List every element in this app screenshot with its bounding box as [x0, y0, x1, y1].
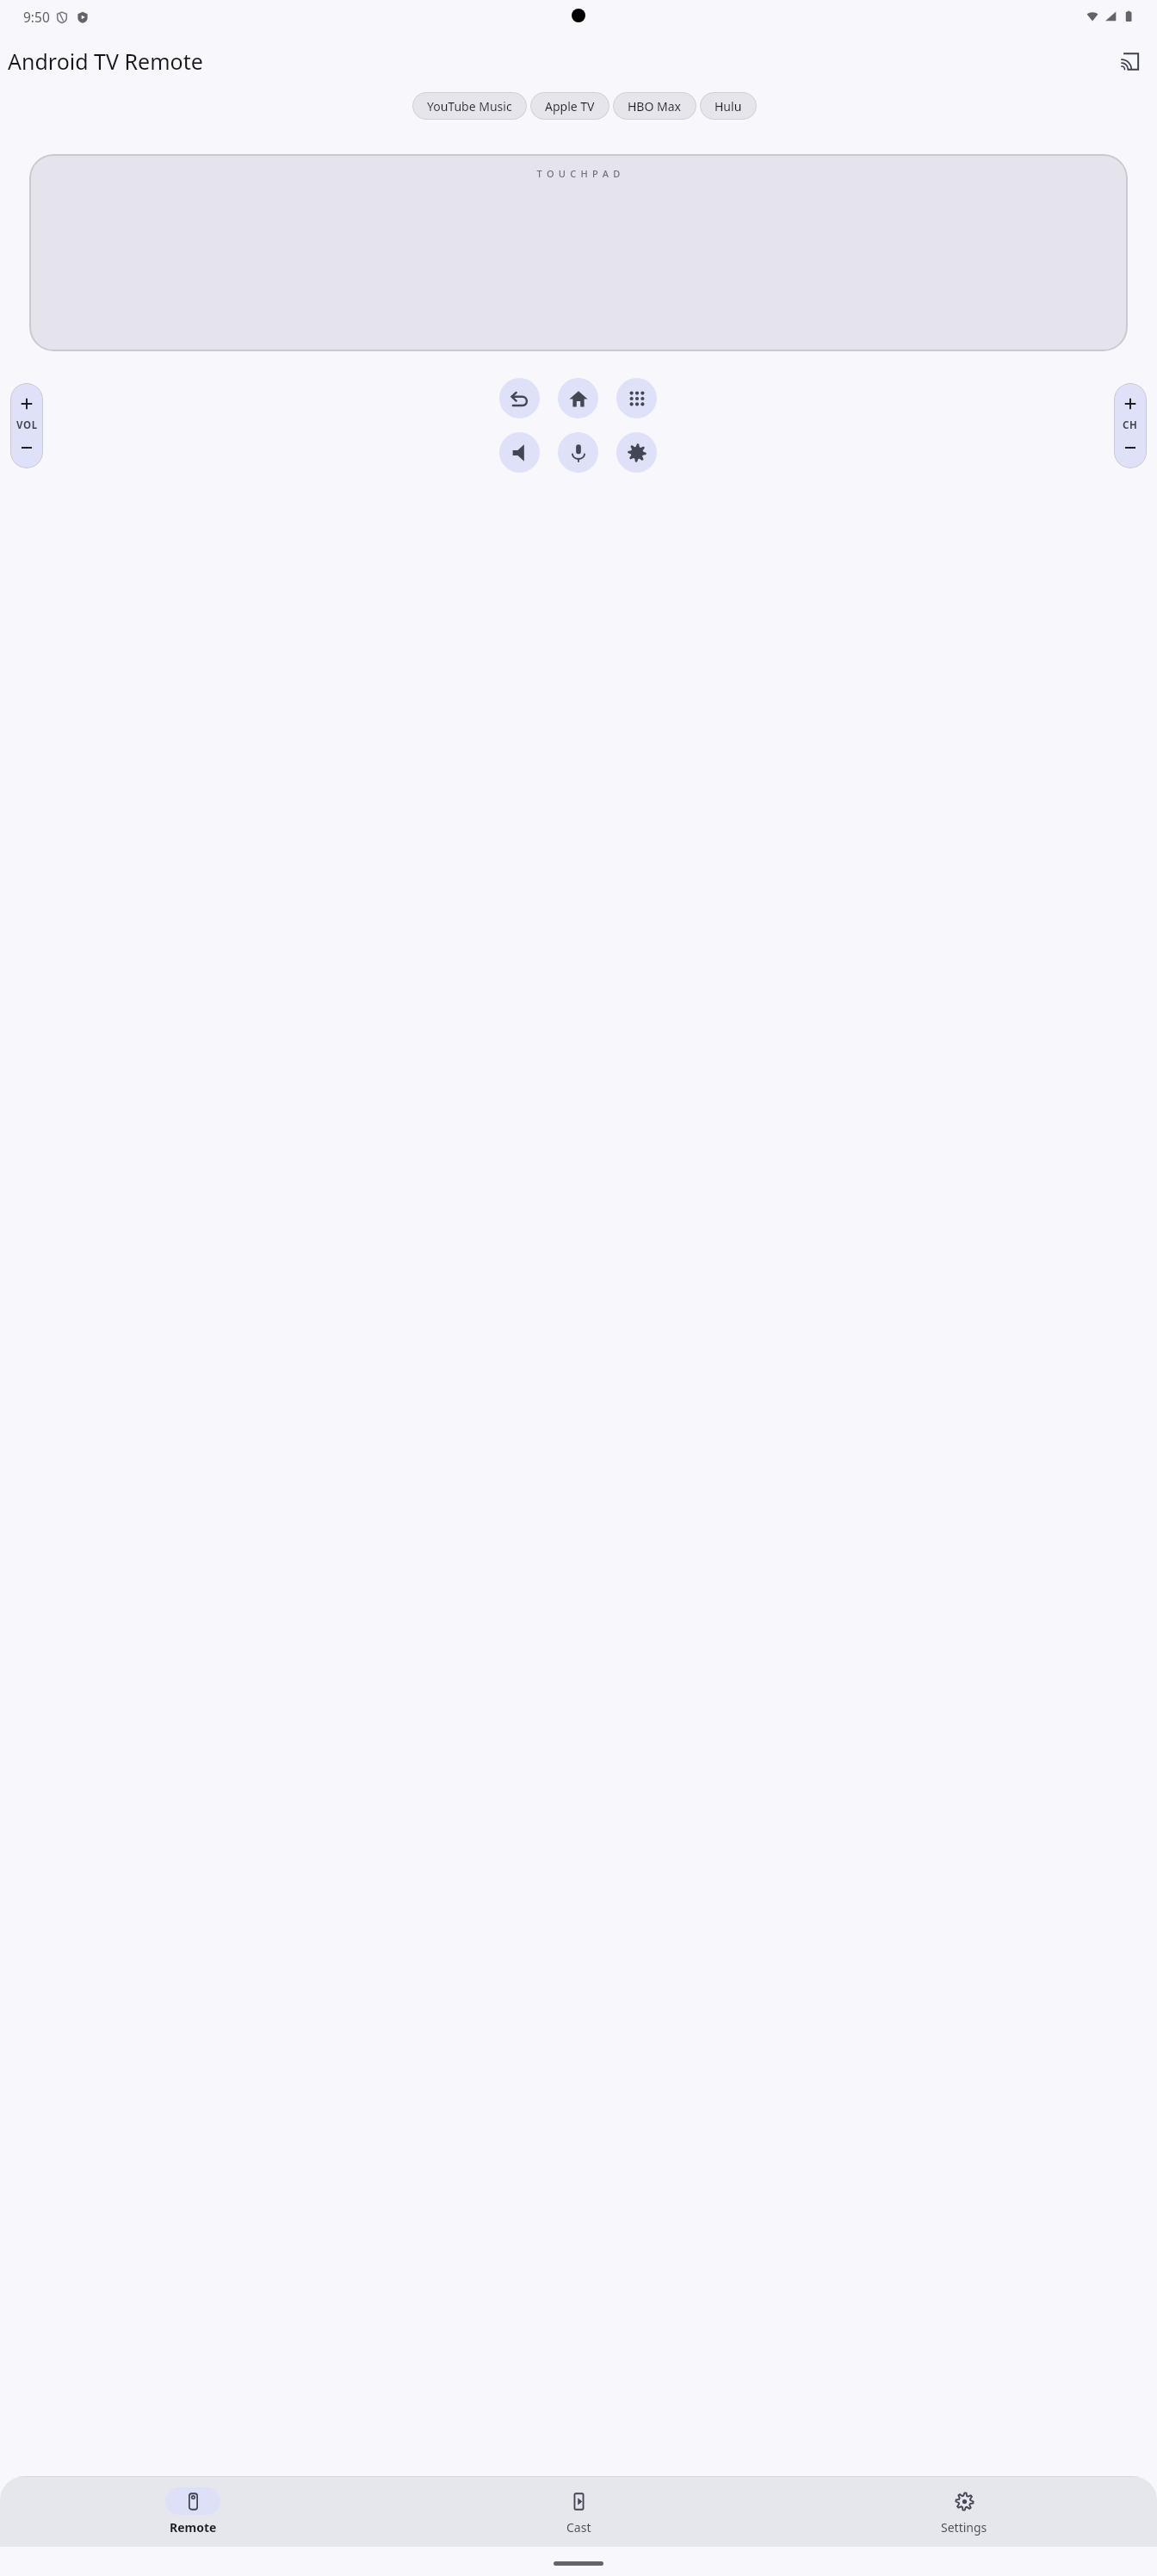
button[interactable]: Channel [1114, 383, 1147, 468]
button[interactable]: Apps [616, 378, 657, 418]
staticText: 9:50 [23, 8, 50, 26]
button[interactable]: Apple TV [530, 92, 609, 120]
staticText: T O U C H P A D [536, 167, 622, 180]
staticText: CH [1123, 418, 1138, 432]
button[interactable]: Volume [10, 383, 43, 468]
button[interactable]: Remote [0, 2476, 386, 2547]
staticText: YouTube Music [427, 98, 512, 115]
button[interactable]: Voice search [558, 432, 598, 473]
staticText: Android TV Remote [8, 46, 203, 76]
staticText: Cast [566, 2519, 591, 2536]
staticText: Apple TV [545, 98, 595, 115]
staticText: HBO Max [628, 98, 682, 115]
button[interactable]: YouTube Music [412, 92, 527, 120]
button[interactable]: Hulu [700, 92, 757, 120]
button[interactable]: Settings [771, 2476, 1157, 2547]
staticText: Settings [941, 2519, 987, 2536]
button[interactable]: HBO Max [613, 92, 696, 120]
button[interactable]: Cast [1109, 40, 1150, 82]
button[interactable]: Back [499, 378, 540, 418]
button[interactable]: Home [558, 378, 598, 418]
button[interactable]: Settings [616, 432, 657, 473]
staticText: Remote [170, 2519, 217, 2536]
staticText: Hulu [715, 98, 742, 115]
button[interactable]: Cast [386, 2476, 771, 2547]
staticText: VOL [16, 418, 38, 432]
button[interactable]: Touchpad [29, 154, 1128, 351]
button[interactable]: Mute [499, 432, 540, 473]
